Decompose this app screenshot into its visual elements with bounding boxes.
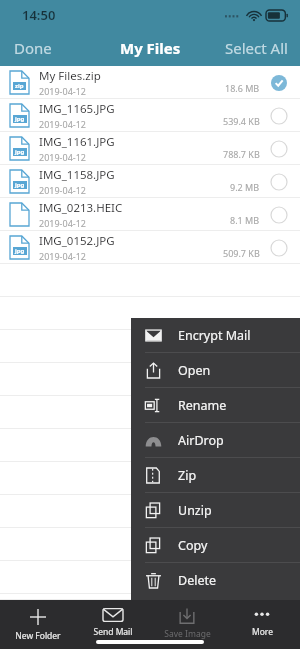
staticText: Copy: [178, 537, 208, 554]
button[interactable]: Open: [131, 353, 300, 388]
staticText: Zip: [178, 467, 197, 484]
button[interactable]: Send Mail: [76, 604, 150, 649]
staticText: Select All: [225, 38, 288, 58]
button[interactable]: jpg: [0, 231, 300, 264]
button[interactable]: New Folder: [1, 604, 75, 649]
button[interactable]: Done: [0, 32, 66, 64]
staticText: jpg: [15, 181, 25, 189]
button[interactable]: Rename: [131, 388, 300, 423]
staticText: Save Image: [164, 628, 211, 640]
staticText: 18.6 MB: [225, 82, 260, 94]
button[interactable]: Save Image: [150, 604, 224, 649]
staticText: 2019-04-12: [39, 151, 86, 163]
staticText: Send Mail: [93, 626, 133, 638]
staticText: 539.4 KB: [223, 115, 260, 127]
staticText: Done: [14, 38, 52, 58]
button[interactable]: Select All: [213, 32, 300, 64]
staticText: zip: [15, 82, 24, 90]
staticText: AirDrop: [178, 432, 224, 449]
button[interactable]: jpg: [0, 99, 300, 132]
staticText: 2019-04-12: [39, 85, 86, 97]
button[interactable]: IMG_0213.HEIC: [0, 198, 300, 231]
staticText: 2019-04-12: [39, 250, 86, 262]
button[interactable]: More: [225, 604, 299, 649]
staticText: IMG_1158.JPG: [39, 167, 115, 183]
button[interactable]: Encrypt Mail: [131, 318, 300, 353]
staticText: 9.2 MB: [230, 181, 260, 193]
staticText: 14:50: [22, 6, 56, 24]
staticText: My Files: [120, 38, 181, 58]
button[interactable]: Copy: [131, 528, 300, 563]
staticText: jpg: [15, 148, 25, 156]
staticText: My Files.zip: [39, 68, 101, 84]
staticText: IMG_1161.JPG: [39, 134, 115, 150]
button[interactable]: Zip: [131, 458, 300, 493]
staticText: Open: [178, 362, 211, 379]
staticText: 509.7 KB: [223, 247, 260, 259]
staticText: More: [252, 626, 273, 638]
button[interactable]: AirDrop: [131, 423, 300, 458]
staticText: 8.1 MB: [230, 214, 260, 226]
button[interactable]: Delete: [131, 563, 300, 598]
staticText: Encrypt Mail: [178, 327, 251, 344]
staticText: 2019-04-12: [39, 184, 86, 196]
staticText: jpg: [15, 247, 25, 255]
button[interactable]: jpg: [0, 165, 300, 198]
button[interactable]: jpg: [0, 132, 300, 165]
staticText: Delete: [178, 572, 217, 589]
staticText: IMG_0152.JPG: [39, 233, 115, 249]
staticText: Unzip: [178, 502, 212, 519]
staticText: New Folder: [15, 630, 61, 642]
staticText: 788.7 KB: [223, 148, 260, 160]
staticText: Rename: [178, 397, 227, 414]
staticText: IMG_1165.JPG: [39, 101, 115, 117]
button[interactable]: Unzip: [131, 493, 300, 528]
staticText: 2019-04-12: [39, 217, 86, 229]
staticText: 2019-04-12: [39, 118, 86, 130]
staticText: jpg: [15, 115, 25, 123]
button[interactable]: zip: [0, 66, 300, 99]
staticText: IMG_0213.HEIC: [39, 200, 123, 216]
